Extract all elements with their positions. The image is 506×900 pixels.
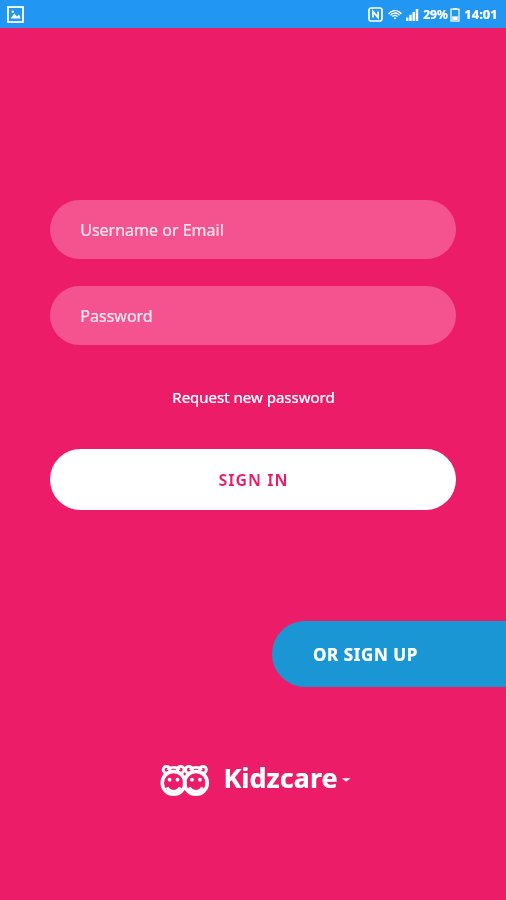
button[interactable]: OR SIGN UP [272, 621, 506, 687]
staticText: Kidzcare [223, 759, 338, 796]
staticText: Request new password [172, 387, 335, 407]
staticText: Username or Email [80, 219, 224, 241]
staticText: SIGN IN [218, 469, 289, 491]
staticText: 14:01 [464, 5, 498, 23]
staticText: OR SIGN UP [313, 643, 418, 666]
staticText: Password [80, 305, 153, 327]
button[interactable]: SIGN IN [50, 449, 456, 510]
button[interactable]: Request new password [166, 383, 341, 411]
staticText: 29% [423, 6, 448, 22]
button[interactable]: Username or Email [50, 200, 456, 259]
button[interactable]: Password [50, 286, 456, 345]
